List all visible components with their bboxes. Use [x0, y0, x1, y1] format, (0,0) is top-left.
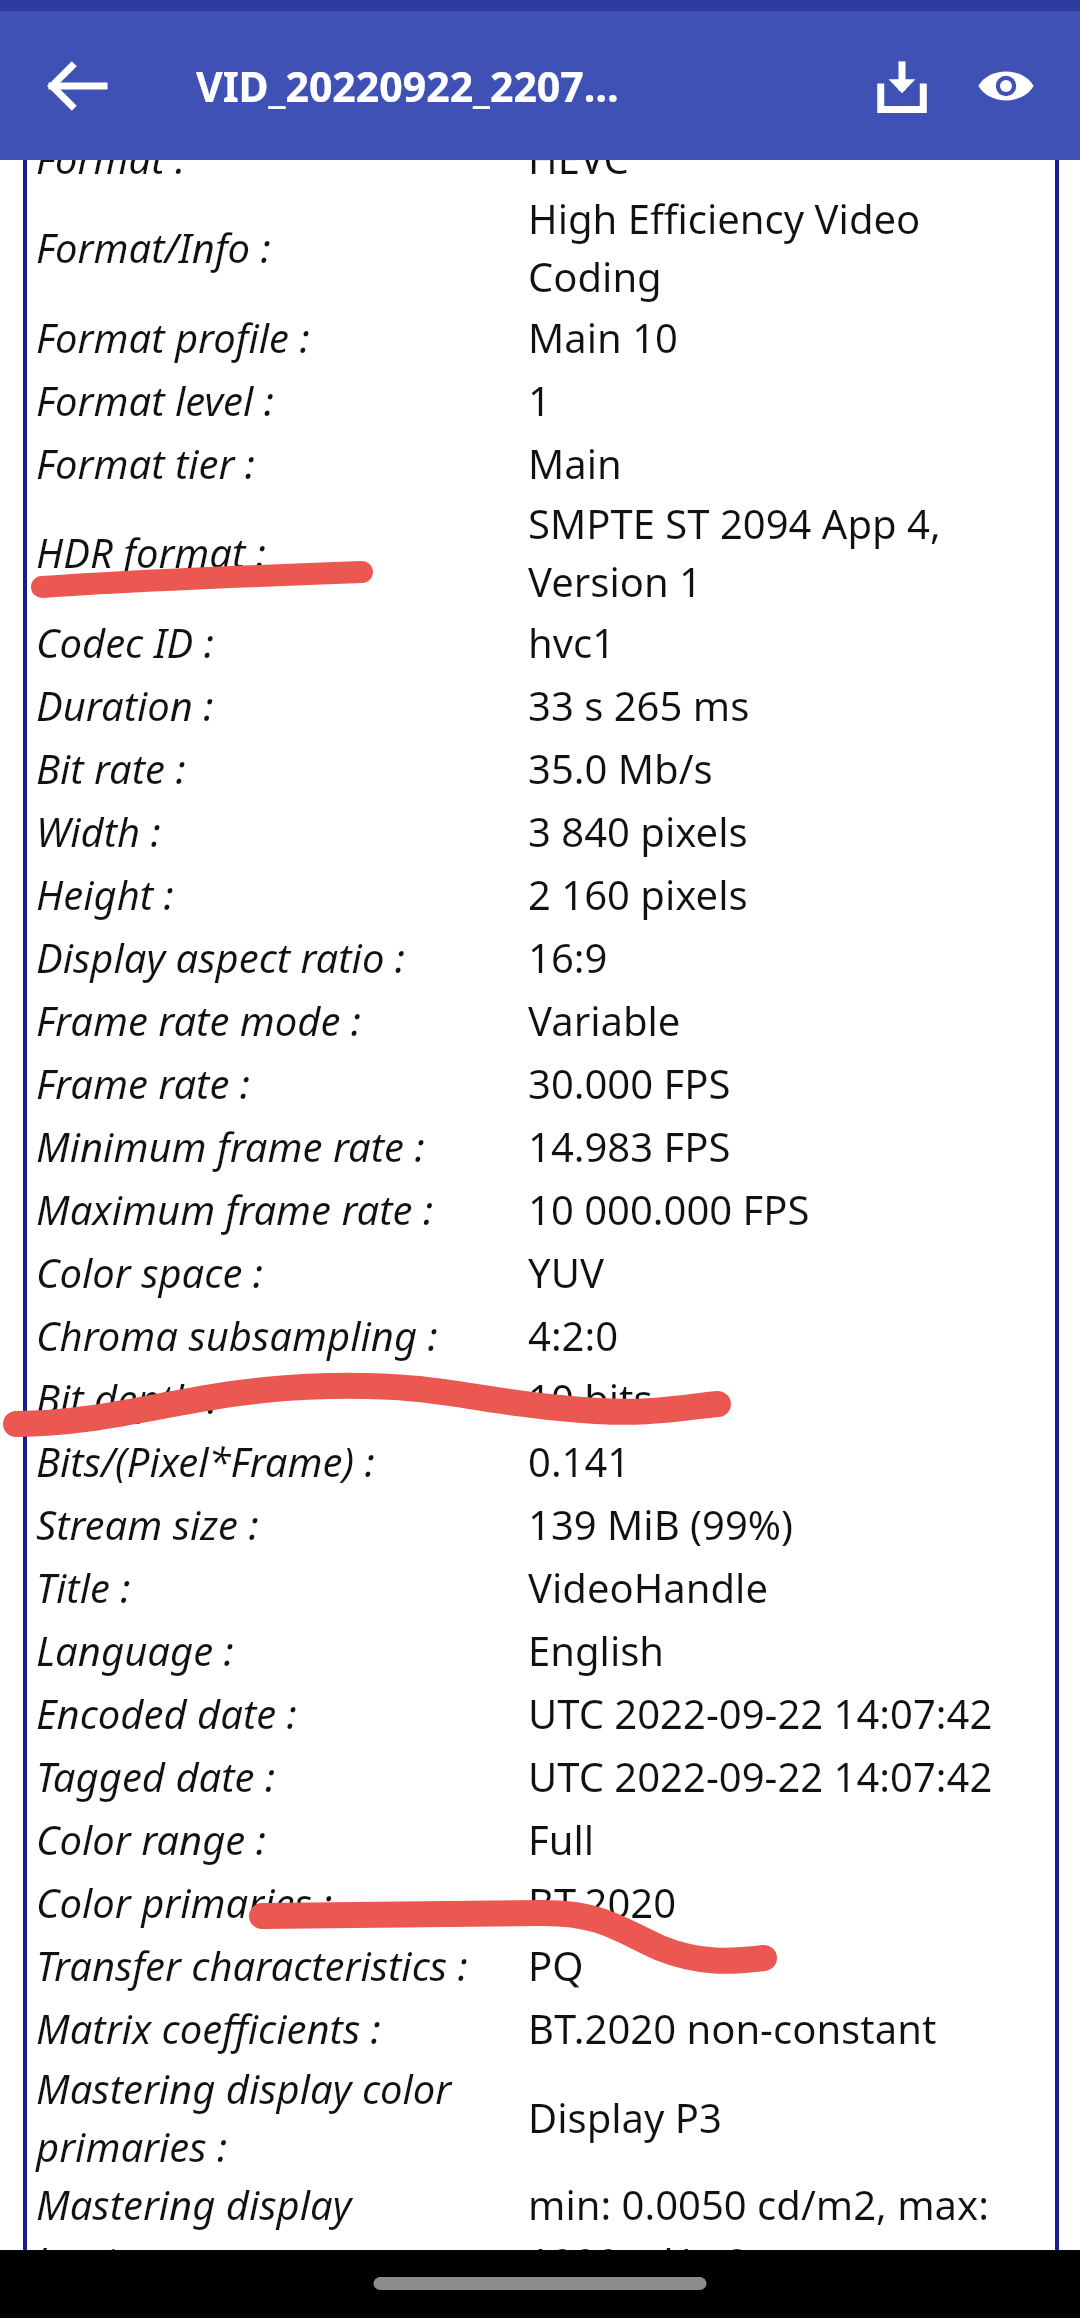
- button[interactable]: Minimum frame rate :: [0, 1114, 1080, 1177]
- staticText: Codec ID :: [36, 615, 528, 669]
- staticText: Transfer characteristics :: [36, 1938, 528, 1992]
- staticText: Tagged date :: [36, 1749, 528, 1803]
- staticText: Height :: [36, 867, 528, 921]
- staticText: 3 840 pixels: [528, 804, 1054, 858]
- button[interactable]: Chroma subsampling :: [0, 1303, 1080, 1366]
- staticText: PQ: [528, 1938, 1054, 1992]
- staticText: Maximum frame rate :: [36, 1182, 528, 1236]
- button[interactable]: Stream size :: [0, 1492, 1080, 1555]
- button[interactable]: Bits/(Pixel*Frame) :: [0, 1429, 1080, 1492]
- button[interactable]: Bit depth :: [0, 1366, 1080, 1429]
- button[interactable]: Color space :: [0, 1240, 1080, 1303]
- staticText: UTC 2022-09-22 14:07:42: [528, 1749, 1054, 1803]
- button[interactable]: Format profile :: [0, 305, 1080, 368]
- staticText: Format profile :: [36, 310, 528, 364]
- staticText: YUV: [528, 1245, 1054, 1299]
- button[interactable]: Bit rate :: [0, 736, 1080, 799]
- button[interactable]: Format tier :: [0, 431, 1080, 494]
- staticText: Chroma subsampling :: [36, 1308, 528, 1362]
- button[interactable]: View: [954, 34, 1058, 138]
- button[interactable]: Title :: [0, 1555, 1080, 1618]
- staticText: Bits/(Pixel*Frame) :: [36, 1434, 528, 1488]
- staticText: 30.000 FPS: [528, 1056, 1054, 1110]
- staticText: Mastering display color primaries :: [36, 2061, 528, 2173]
- staticText: Minimum frame rate :: [36, 1119, 528, 1173]
- staticText: English: [528, 1623, 1054, 1677]
- button[interactable]: Tagged date :: [0, 1744, 1080, 1807]
- staticText: 4:2:0: [528, 1308, 1054, 1362]
- staticText: 2 160 pixels: [528, 867, 1054, 921]
- staticText: BT.2020: [528, 1875, 1054, 1929]
- button[interactable]: Mastering display luminance :: [0, 2175, 1080, 2291]
- staticText: Width :: [36, 804, 528, 858]
- staticText: Variable: [528, 993, 1054, 1047]
- staticText: Format/Info :: [36, 220, 528, 274]
- staticText: HEVC: [528, 131, 1054, 185]
- staticText: HDR format :: [36, 525, 528, 579]
- staticText: Duration :: [36, 678, 528, 732]
- button[interactable]: Download: [850, 34, 954, 138]
- button[interactable]: Height :: [0, 862, 1080, 925]
- staticText: VideoHandle: [528, 1560, 1054, 1614]
- staticText: 35.0 Mb/s: [528, 741, 1054, 795]
- button[interactable]: Duration :: [0, 673, 1080, 736]
- staticText: Main 10: [528, 310, 1054, 364]
- staticText: Color range :: [36, 1812, 528, 1866]
- staticText: Frame rate :: [36, 1056, 528, 1110]
- staticText: Frame rate mode :: [36, 993, 528, 1047]
- button[interactable]: Maximum frame rate :: [0, 1177, 1080, 1240]
- button[interactable]: Matrix coefficients :: [0, 1996, 1080, 2059]
- staticText: Format tier :: [36, 436, 528, 490]
- staticText: 0.141: [528, 1434, 1054, 1488]
- button[interactable]: Format/Info :: [0, 189, 1080, 305]
- staticText: Title :: [36, 1560, 528, 1614]
- staticText: Bit depth :: [36, 1371, 528, 1425]
- staticText: High Efficiency Video Coding: [528, 191, 1054, 303]
- staticText: 10 000.000 FPS: [528, 1182, 1054, 1236]
- staticText: 1: [528, 373, 1054, 427]
- staticText: 139 MiB (99%): [528, 1497, 1054, 1551]
- staticText: Color space :: [36, 1245, 528, 1299]
- button[interactable]: Frame rate :: [0, 1051, 1080, 1114]
- button[interactable]: Color primaries :: [0, 1870, 1080, 1933]
- staticText: Main: [528, 436, 1054, 490]
- button[interactable]: Back: [28, 36, 128, 136]
- button[interactable]: Frame rate mode :: [0, 988, 1080, 1051]
- button[interactable]: HDR format :: [0, 494, 1080, 610]
- button[interactable]: Codec ID :: [0, 610, 1080, 673]
- button[interactable]: Format level :: [0, 368, 1080, 431]
- staticText: Full: [528, 1812, 1054, 1866]
- button[interactable]: Display aspect ratio :: [0, 925, 1080, 988]
- staticText: Display aspect ratio :: [36, 930, 528, 984]
- staticText: Display P3: [528, 2090, 1054, 2144]
- staticText: 16:9: [528, 930, 1054, 984]
- button[interactable]: Transfer characteristics :: [0, 1933, 1080, 1996]
- staticText: 33 s 265 ms: [528, 678, 1054, 732]
- staticText: Format level :: [36, 373, 528, 427]
- staticText: 10 bits: [528, 1371, 1054, 1425]
- staticText: 14.983 FPS: [528, 1119, 1054, 1173]
- button[interactable]: VID_20220922_2207…: [196, 58, 619, 114]
- button[interactable]: Width :: [0, 799, 1080, 862]
- button[interactable]: Color range :: [0, 1807, 1080, 1870]
- staticText: hvc1: [528, 615, 1054, 669]
- button[interactable]: Encoded date :: [0, 1681, 1080, 1744]
- staticText: SMPTE ST 2094 App 4, Version 1: [528, 496, 1054, 608]
- staticText: Format :: [36, 131, 528, 185]
- staticText: Matrix coefficients :: [36, 2001, 528, 2055]
- staticText: Color primaries :: [36, 1875, 528, 1929]
- staticText: Mastering display luminance :: [36, 2177, 528, 2289]
- staticText: Encoded date :: [36, 1686, 528, 1740]
- staticText: BT.2020 non-constant: [528, 2001, 1054, 2055]
- button[interactable]: Mastering display color primaries :: [0, 2059, 1080, 2175]
- staticText: min: 0.0050 cd/m2, max: 1000 cd/m2: [528, 2177, 1054, 2289]
- staticText: UTC 2022-09-22 14:07:42: [528, 1686, 1054, 1740]
- staticText: Bit rate :: [36, 741, 528, 795]
- staticText: Stream size :: [36, 1497, 528, 1551]
- button[interactable]: Language :: [0, 1618, 1080, 1681]
- button[interactable]: Format :: [0, 126, 1080, 189]
- staticText: Language :: [36, 1623, 528, 1677]
